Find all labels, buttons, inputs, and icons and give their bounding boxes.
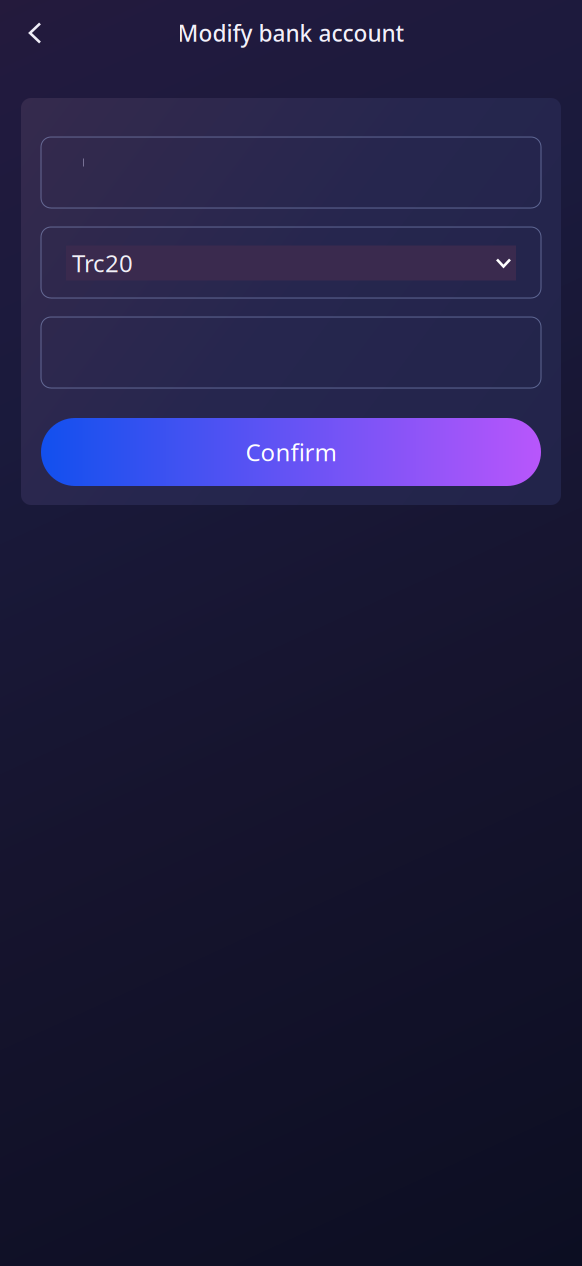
button[interactable]: Back xyxy=(0,0,70,66)
button[interactable]: Bank account number xyxy=(41,137,541,208)
staticText: Trc20 xyxy=(72,247,133,279)
button[interactable]: Confirm xyxy=(41,418,541,486)
staticText: Modify bank account xyxy=(177,18,404,48)
staticText: Confirm xyxy=(245,436,336,468)
button[interactable]: Remark xyxy=(41,317,541,388)
button[interactable]: Trc20 xyxy=(66,245,516,280)
